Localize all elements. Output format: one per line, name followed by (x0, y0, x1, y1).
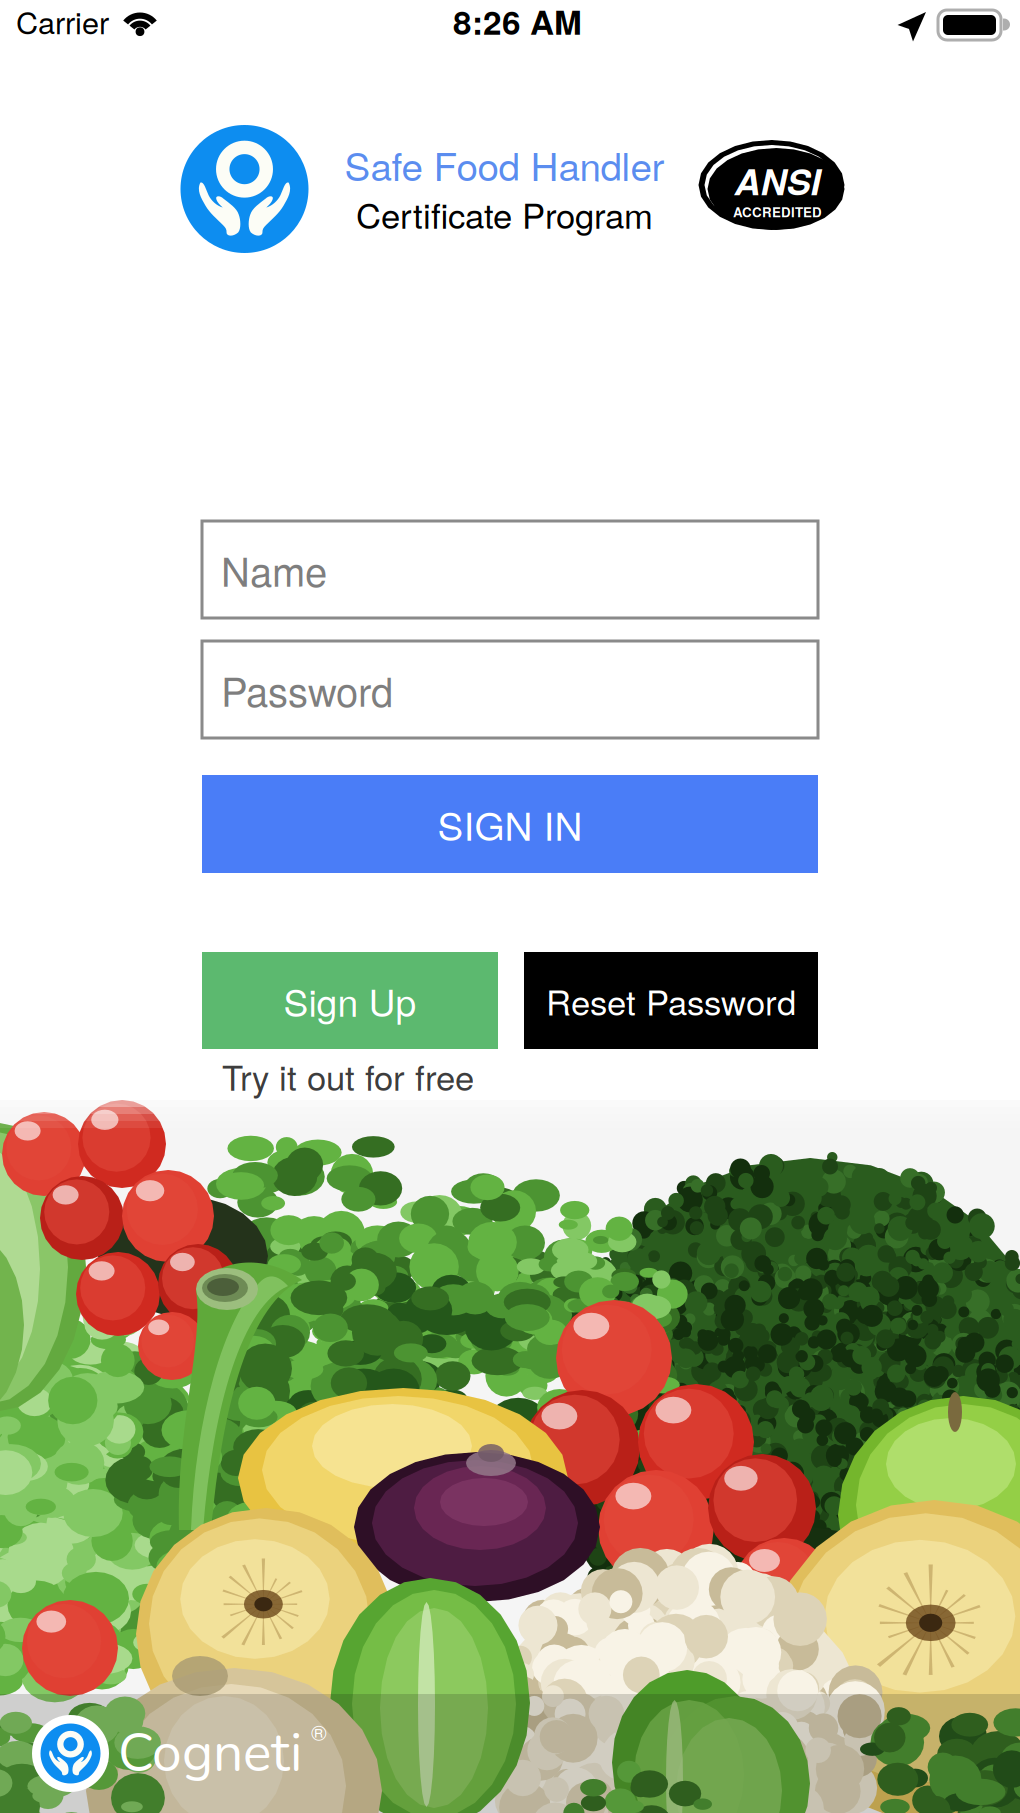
staticText: 8:26 AM (453, 0, 582, 45)
button[interactable]: Sign Up (202, 952, 498, 1049)
staticText: Reset Password (546, 976, 796, 1025)
staticText: Try it out for free (222, 1051, 474, 1101)
button[interactable]: Reset Password (524, 952, 818, 1049)
staticText: Cogneti (118, 1717, 302, 1790)
staticText: Name (221, 541, 327, 598)
staticText: Sign Up (283, 974, 416, 1027)
staticText: Password (221, 661, 393, 718)
staticText: SIGN IN (437, 796, 582, 852)
staticText: ACCREDITED (733, 202, 822, 221)
button[interactable]: Password (202, 641, 818, 738)
staticText: Safe Food Handler (344, 136, 664, 192)
staticText: Certificate Program (356, 189, 653, 238)
button[interactable]: SIGN IN (202, 775, 818, 873)
button[interactable]: Name (202, 521, 818, 618)
staticText: Carrier (16, 0, 109, 43)
staticText: ® (311, 1716, 327, 1747)
staticText: ANSI (734, 155, 820, 206)
